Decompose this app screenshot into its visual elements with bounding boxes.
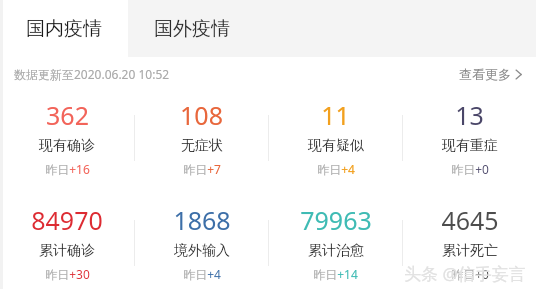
staticText: 昨日+0 (451, 161, 489, 177)
button[interactable]: 1868 (135, 203, 268, 282)
staticText: 国外疫情 (154, 17, 230, 41)
staticText: 累计死亡 (442, 242, 498, 260)
staticText: 现有疑似 (308, 137, 364, 155)
button[interactable]: 国内疫情 (0, 0, 128, 57)
staticText: 362 (46, 98, 89, 132)
button[interactable]: 108 (135, 98, 268, 177)
staticText: 累计治愈 (308, 242, 364, 260)
staticText: 昨日+0 (451, 266, 489, 282)
staticText: 昨日+30 (45, 266, 90, 282)
staticText: 昨日+14 (313, 266, 358, 282)
staticText: 查看更多 (459, 66, 511, 82)
staticText: 昨日+4 (317, 161, 355, 177)
staticText: 境外输入 (174, 242, 230, 260)
button[interactable]: 4645 (403, 203, 536, 282)
staticText: 昨日+16 (45, 161, 90, 177)
staticText: 4645 (441, 203, 499, 237)
staticText: 108 (180, 98, 223, 132)
staticText: 11 (321, 98, 350, 132)
staticText: 累计确诊 (39, 242, 95, 260)
staticText: 国内疫情 (26, 17, 102, 41)
staticText: 无症状 (181, 137, 223, 155)
button[interactable]: 13 (403, 98, 536, 177)
staticText: 数据更新至2020.06.20 10:52 (14, 66, 170, 82)
button[interactable]: 国外疫情 (128, 0, 256, 57)
staticText: 昨日+7 (183, 161, 221, 177)
staticText: 现有确诊 (39, 137, 95, 155)
staticText: 13 (455, 98, 484, 132)
staticText: 1868 (173, 203, 231, 237)
button[interactable]: 查看更多 (457, 62, 524, 86)
button[interactable]: 84970 (0, 203, 134, 282)
staticText: 84970 (31, 203, 103, 237)
button[interactable]: 11 (269, 98, 402, 177)
staticText: 79963 (300, 203, 372, 237)
button[interactable]: 362 (0, 98, 134, 177)
staticText: 头条 @信手妄言 (404, 262, 526, 285)
staticText: 现有重症 (442, 137, 498, 155)
button[interactable]: 79963 (269, 203, 402, 282)
staticText: 昨日+4 (183, 266, 221, 282)
